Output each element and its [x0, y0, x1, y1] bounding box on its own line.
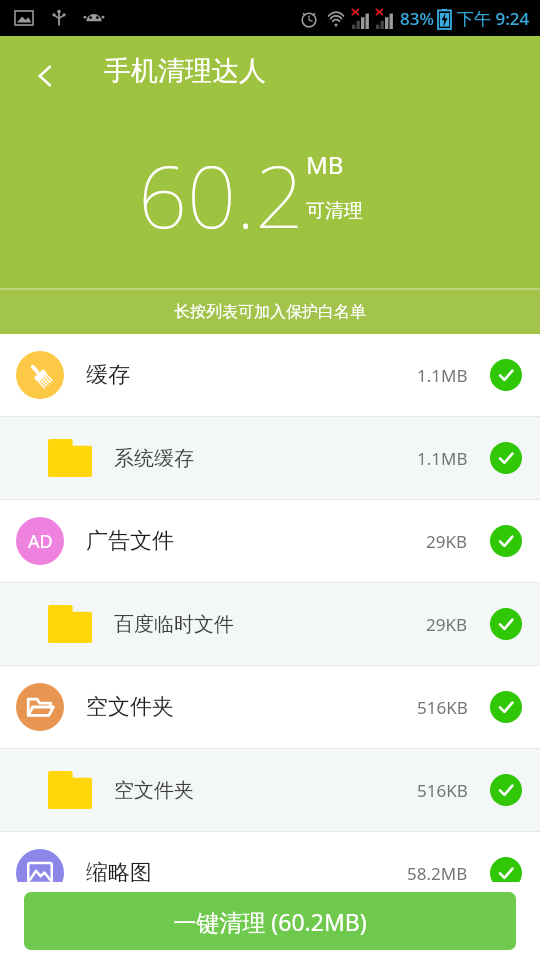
- staticText: 29KB: [426, 530, 468, 553]
- staticText: 60.2: [138, 136, 304, 253]
- staticText: 系统缓存: [114, 446, 194, 471]
- staticText: 一键清理 (60.2MB): [173, 906, 367, 937]
- staticText: 空文件夹: [86, 693, 174, 721]
- staticText: 广告文件: [86, 527, 174, 555]
- staticText: 空文件夹: [114, 778, 194, 803]
- button[interactable]: Selected: [490, 359, 522, 391]
- staticText: 29KB: [426, 613, 468, 636]
- button[interactable]: 一键清理 (60.2MB): [24, 892, 516, 950]
- button[interactable]: Back: [18, 48, 74, 104]
- button[interactable]: Selected: [490, 608, 522, 640]
- staticText: 长按列表可加入保护白名单: [174, 302, 366, 322]
- staticText: 1.1MB: [417, 447, 468, 470]
- button[interactable]: 空文件夹: [0, 666, 540, 748]
- staticText: AD: [28, 529, 53, 554]
- button[interactable]: 缩略图: [0, 832, 540, 914]
- button[interactable]: Selected: [490, 442, 522, 474]
- button[interactable]: AD: [0, 500, 540, 582]
- button[interactable]: 长按列表可加入保护白名单: [0, 290, 540, 334]
- button[interactable]: Selected: [490, 857, 522, 889]
- staticText: 1.1MB: [417, 364, 468, 387]
- staticText: 下午 9:24: [457, 7, 530, 30]
- button[interactable]: 空文件夹: [0, 749, 540, 831]
- staticText: 百度临时文件: [114, 612, 234, 637]
- button[interactable]: 系统缓存: [0, 417, 540, 499]
- button[interactable]: Selected: [490, 525, 522, 557]
- staticText: MB: [306, 148, 344, 181]
- staticText: 可清理: [306, 199, 363, 223]
- staticText: 缓存: [86, 361, 130, 389]
- staticText: 缩略图: [86, 859, 152, 887]
- button[interactable]: Selected: [490, 691, 522, 723]
- staticText: 手机清理达人: [104, 54, 266, 88]
- staticText: 516KB: [417, 696, 468, 719]
- staticText: 58.2MB: [407, 862, 468, 885]
- button[interactable]: Selected: [490, 774, 522, 806]
- button[interactable]: 百度临时文件: [0, 583, 540, 665]
- staticText: 516KB: [417, 779, 468, 802]
- staticText: 83%: [400, 7, 434, 30]
- button[interactable]: 缓存: [0, 334, 540, 416]
